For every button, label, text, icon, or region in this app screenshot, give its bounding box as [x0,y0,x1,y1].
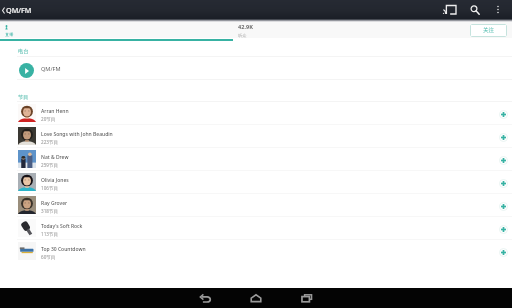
staticText: Arran Henn [41,108,69,115]
staticText: Nat & Drew [41,154,69,161]
staticText: 106节目 [41,185,59,191]
button[interactable]: Add to playlist [494,149,512,171]
staticText: 20节目 [41,116,56,122]
button[interactable]: Back [182,288,228,308]
button[interactable]: QM/FM [0,2,38,18]
button[interactable]: Home [233,288,279,308]
staticText: 318节目 [41,208,59,214]
staticText: QM/FM [41,65,61,73]
staticText: Ray Grover [41,200,68,207]
button[interactable]: Search [462,0,487,19]
button[interactable]: QM/FM [0,57,512,80]
staticText: 223节目 [41,139,59,145]
button[interactable]: Add to playlist [494,195,512,217]
staticText: Love Songs with John Beaudin [41,131,113,138]
staticText: QM/FM [6,5,32,15]
button[interactable]: Olivia Jones [0,171,512,194]
staticText: 关注 [483,27,495,34]
staticText: 259节目 [41,162,59,168]
button[interactable]: Today's Soft Rock [0,217,512,240]
staticText: Top 30 Countdown [41,246,86,253]
staticText: 直播 [5,32,14,37]
staticText: 42.9K [238,23,253,31]
staticText: Today's Soft Rock [41,223,83,230]
staticText: 电台 [18,48,29,55]
button[interactable]: Add to playlist [494,126,512,148]
button[interactable]: Ray Grover [0,194,512,217]
button[interactable]: More options [487,0,508,19]
button[interactable]: Recent apps [284,288,330,308]
button[interactable]: Love Songs with John Beaudin [0,125,512,148]
button[interactable]: Cast [437,0,462,19]
button[interactable]: Add to playlist [494,103,512,125]
button[interactable]: Top 30 Countdown [0,240,512,263]
staticText: 听众 [238,33,247,38]
button[interactable]: Add to playlist [494,172,512,194]
button[interactable]: Add to playlist [494,241,512,263]
button[interactable]: Add to playlist [494,218,512,240]
staticText: Olivia Jones [41,177,69,184]
staticText: 节目 [18,94,29,101]
staticText: 60节目 [41,254,56,260]
button[interactable]: 关注 [470,24,507,37]
button[interactable]: Arran Henn [0,102,512,125]
button[interactable]: Nat & Drew [0,148,512,171]
staticText: 113节目 [41,231,59,237]
